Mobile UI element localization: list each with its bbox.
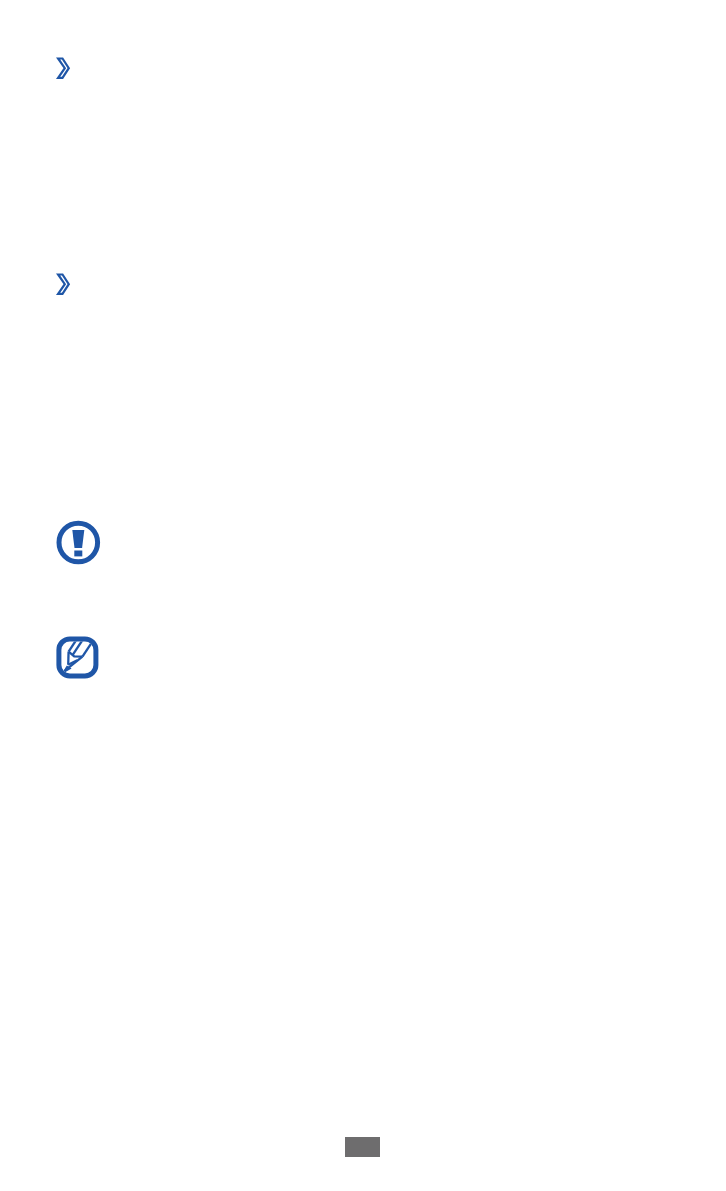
button[interactable]: Note	[54, 634, 102, 682]
button[interactable]: Section	[55, 55, 75, 81]
button[interactable]: Caution	[54, 518, 102, 566]
button[interactable]: Section	[55, 271, 75, 297]
